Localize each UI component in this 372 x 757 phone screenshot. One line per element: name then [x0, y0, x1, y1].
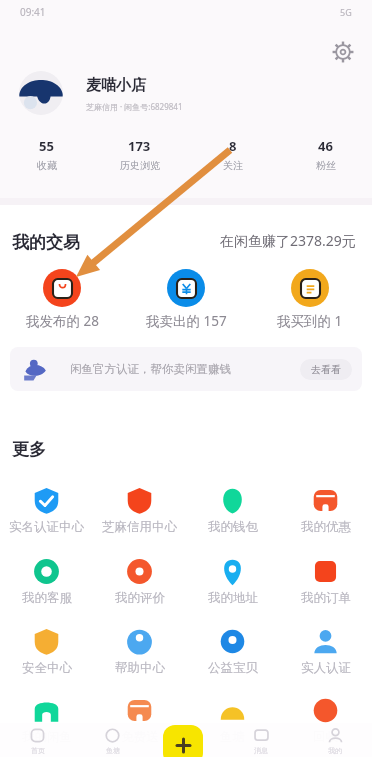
staticText: 回收 [313, 729, 338, 745]
button[interactable]: 我的客服 [0, 556, 93, 606]
staticText: 我买到的 1 [277, 312, 343, 330]
staticText: 麦喵小店 [86, 76, 146, 95]
staticText: 我的评价 [115, 590, 165, 606]
staticText: 更多 [12, 439, 46, 460]
staticText: 我的订单 [301, 590, 351, 606]
staticText: 闲鱼官方认证，帮你卖闲置赚钱 [70, 362, 231, 376]
staticText: 我的客服 [22, 590, 72, 606]
button[interactable]: 我卖出的 157 [124, 269, 248, 330]
staticText: 09:41 [20, 5, 46, 19]
button[interactable]: 我的 [298, 726, 372, 755]
staticText: 我的钱包 [208, 519, 258, 535]
staticText: 在闲鱼赚了2378.29元 [220, 231, 356, 250]
button[interactable]: 我的订单 [279, 556, 372, 606]
staticText: 关注 [223, 159, 243, 172]
button[interactable]: 实人认证 [279, 626, 372, 676]
staticText: 鱼塘 [106, 746, 120, 755]
staticText: 我发布的 28 [26, 312, 99, 330]
staticText: 去看看 [311, 363, 341, 376]
button[interactable]: 46 [279, 137, 372, 172]
button[interactable]: 首页 [0, 726, 75, 755]
button[interactable]: 消息 [224, 726, 298, 755]
staticText: 我的闲鱼 [22, 729, 72, 745]
button[interactable]: 173 [93, 137, 186, 172]
button[interactable]: 安全中心 [0, 626, 93, 676]
staticText: 我的地址 [208, 590, 258, 606]
staticText: 芝麻信用 · 闲鱼号:6829841 [86, 101, 183, 112]
staticText: 安全中心 [22, 660, 72, 676]
staticText: 实人认证 [301, 660, 351, 676]
button[interactable]: Publish [163, 725, 203, 757]
staticText: 我的 [328, 746, 342, 755]
button[interactable]: 鱼塘 [186, 695, 279, 745]
staticText: 首页 [31, 746, 45, 755]
staticText: 173 [128, 137, 151, 155]
staticText: 46 [318, 137, 333, 155]
button[interactable]: 我的钱包 [186, 485, 279, 535]
staticText: 收藏 [37, 159, 57, 172]
button[interactable]: 我的优惠 [279, 485, 372, 535]
button[interactable]: 免费送 [93, 695, 186, 745]
button[interactable]: 8 [186, 137, 279, 172]
button[interactable]: 闲鱼官方认证，帮你卖闲置赚钱 [10, 347, 362, 391]
staticText: 我卖出的 157 [146, 312, 227, 330]
button[interactable]: 帮助中心 [93, 626, 186, 676]
staticText: 我的优惠 [301, 519, 351, 535]
staticText: 实名认证中心 [9, 519, 84, 535]
staticText: 历史浏览 [120, 159, 160, 172]
staticText: 帮助中心 [115, 660, 165, 676]
button[interactable]: 我的地址 [186, 556, 279, 606]
button[interactable]: 公益宝贝 [186, 626, 279, 676]
staticText: 8 [229, 137, 237, 155]
button[interactable]: 55 [0, 137, 93, 172]
button[interactable]: 我发布的 28 [0, 269, 124, 330]
button[interactable]: 鱼塘 [75, 726, 150, 755]
staticText: 公益宝贝 [208, 660, 258, 676]
staticText: 我的交易 [12, 232, 80, 253]
staticText: 55 [39, 137, 54, 155]
staticText: 5G [340, 6, 352, 18]
button[interactable]: 回收 [279, 695, 372, 745]
button[interactable]: 去看看 [300, 359, 352, 380]
staticText: 消息 [254, 746, 268, 755]
button[interactable]: 芝麻信用中心 [93, 485, 186, 535]
button[interactable]: Avatar [19, 71, 63, 115]
button[interactable]: 实名认证中心 [0, 485, 93, 535]
button[interactable]: 我的闲鱼 [0, 695, 93, 745]
staticText: 芝麻信用中心 [102, 519, 177, 535]
button[interactable]: 我的评价 [93, 556, 186, 606]
staticText: 粉丝 [316, 159, 336, 172]
button[interactable]: Settings [332, 41, 354, 63]
button[interactable]: 我买到的 1 [248, 269, 372, 330]
